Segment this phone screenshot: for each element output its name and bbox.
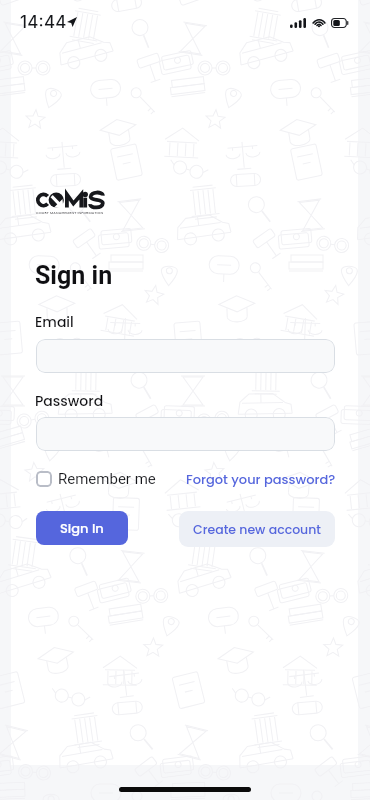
staticText: COURT MANAGEMENT INFORMATION SYSTEM	[36, 210, 116, 215]
button[interactable]: Remember me	[36, 470, 156, 488]
staticText: Email	[35, 312, 74, 332]
button[interactable]	[36, 417, 335, 451]
staticText: 14:44	[20, 12, 67, 33]
staticText: Create new account	[193, 521, 321, 538]
button[interactable]: Create new account	[179, 511, 335, 547]
staticText: Sign in	[35, 261, 113, 290]
staticText: Password	[35, 391, 104, 411]
button[interactable]: Sign In	[36, 511, 128, 545]
button[interactable]: Forgot your password?	[186, 470, 336, 488]
button[interactable]	[36, 339, 335, 373]
staticText: Forgot your password?	[186, 470, 336, 488]
staticText: Sign In	[60, 519, 104, 537]
staticText: Remember me	[58, 470, 156, 488]
